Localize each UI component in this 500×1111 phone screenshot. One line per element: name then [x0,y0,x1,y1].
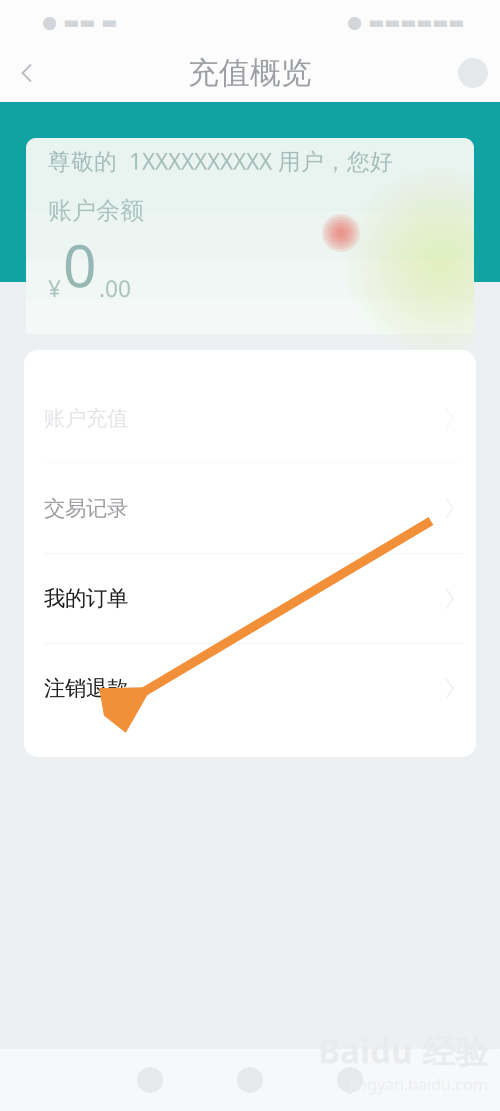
button[interactable]: Recents [100,1050,200,1110]
button[interactable]: 注销退款 [24,644,476,733]
button[interactable]: Home [200,1050,300,1110]
button[interactable]: 交易记录 [24,464,476,553]
button[interactable]: Back [300,1050,400,1110]
staticText: 充值概览 [188,54,312,92]
staticText: 账户余额 [48,196,144,226]
staticText: jingyan.baidu.com [349,1074,488,1095]
staticText: 交易记录 [44,495,128,522]
button[interactable]: Back [0,45,54,101]
staticText: 0 [63,226,97,303]
staticText: 我的订单 [44,585,128,612]
staticText: 注销退款 [44,675,128,702]
staticText: ● ▬▬▬▬▬▬ [347,12,464,32]
staticText: Baidu 经验 [318,1028,488,1073]
button[interactable]: Account [446,45,500,101]
button[interactable]: 我的订单 [24,554,476,643]
staticText: 尊敬的 1XXXXXXXXXX 用户，您好 [48,146,393,176]
staticText: ● ▬▬ ▬ [42,12,117,32]
staticText: .00 [99,273,131,303]
staticText: ¥ [48,273,61,303]
staticText: 账户充值 [44,405,128,432]
